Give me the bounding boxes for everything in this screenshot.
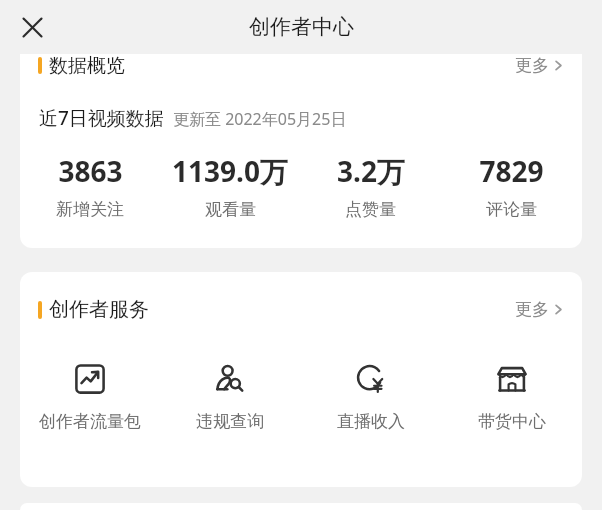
staticText: 数据概览 — [49, 54, 125, 76]
button[interactable]: 1139.0万 — [160, 152, 300, 220]
button[interactable]: 3.2万 — [300, 152, 441, 220]
staticText: 近7日视频数据 — [39, 105, 164, 131]
button[interactable]: 直播收入 — [300, 362, 441, 432]
staticText: 更多 — [515, 55, 549, 76]
staticText: 创作者流量包 — [39, 411, 141, 432]
staticText: 1139.0万 — [172, 152, 288, 190]
staticText: 3.2万 — [337, 152, 405, 190]
button[interactable]: 带货中心 — [441, 362, 582, 432]
staticText: 观看量 — [205, 199, 256, 220]
staticText: 7829 — [479, 152, 544, 190]
button[interactable]: 3863 — [20, 152, 160, 220]
button[interactable]: Close — [10, 5, 54, 49]
button[interactable]: 违规查询 — [160, 362, 300, 432]
staticText: 创作者服务 — [49, 297, 149, 322]
staticText: 更多 — [515, 299, 549, 320]
staticText: 创作者中心 — [249, 14, 354, 40]
button[interactable]: 创作者流量包 — [20, 362, 160, 432]
staticText: 点赞量 — [345, 199, 396, 220]
staticText: 评论量 — [486, 199, 537, 220]
button[interactable]: 更多 — [515, 299, 564, 320]
button[interactable]: 7829 — [441, 152, 582, 220]
staticText: 更新至 2022年05月25日 — [173, 108, 347, 130]
staticText: 3863 — [58, 152, 123, 190]
staticText: 违规查询 — [196, 411, 264, 432]
staticText: 带货中心 — [478, 411, 546, 432]
staticText: 直播收入 — [337, 411, 405, 432]
staticText: 新增关注 — [56, 199, 124, 220]
button[interactable]: 数据概览 — [20, 54, 582, 76]
